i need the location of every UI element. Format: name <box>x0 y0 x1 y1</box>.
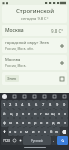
button[interactable]: с <box>18 127 24 136</box>
button[interactable]: т <box>36 127 42 136</box>
button[interactable]: х <box>62 109 68 118</box>
button[interactable]: Москва <box>2 25 67 36</box>
button[interactable]: Панель 1 <box>22 94 27 99</box>
button[interactable]: ь <box>42 127 48 136</box>
button[interactable]: п <box>26 118 32 127</box>
staticText: 7 <box>42 102 45 107</box>
button[interactable]: Панель 5 <box>62 94 67 99</box>
button[interactable]: з <box>56 109 62 118</box>
button[interactable]: е <box>26 109 32 118</box>
button[interactable]: 4 <box>19 100 26 109</box>
staticText: р <box>34 120 37 125</box>
staticText: ?123 <box>3 139 10 143</box>
button[interactable]: 5 <box>26 100 33 109</box>
staticText: й <box>3 111 6 116</box>
button[interactable]: ы <box>8 118 14 127</box>
staticText: у <box>16 111 19 116</box>
button[interactable]: я <box>8 127 13 136</box>
button[interactable]: а <box>20 118 26 127</box>
button[interactable]: 2 <box>7 100 13 109</box>
button[interactable]: ж <box>56 118 62 127</box>
button[interactable]: Строгинской <box>2 5 67 23</box>
button[interactable]: Добавить <box>59 43 64 48</box>
staticText: Россия, Моск. обл. <box>5 47 34 51</box>
button[interactable]: 7 <box>40 100 47 109</box>
button[interactable]: и <box>30 127 36 136</box>
button[interactable]: Shift <box>1 127 8 136</box>
button[interactable]: Поиск <box>57 136 68 145</box>
button[interactable]: Русский <box>23 136 51 145</box>
button[interactable]: м <box>24 127 30 136</box>
staticText: я <box>9 129 12 134</box>
button[interactable]: Очистить <box>59 76 64 81</box>
button[interactable]: о <box>38 118 44 127</box>
staticText: 9 <box>56 102 59 107</box>
staticText: а <box>22 120 25 125</box>
button[interactable]: городской округ Элек <box>2 38 67 53</box>
staticText: э <box>64 120 66 125</box>
staticText: л <box>46 120 49 125</box>
button[interactable]: щ <box>50 109 56 118</box>
button[interactable]: Элек <box>2 72 67 85</box>
button[interactable]: у <box>14 109 20 118</box>
staticText: в <box>16 120 19 125</box>
button[interactable]: г <box>38 109 44 118</box>
staticText: 0 <box>63 102 66 107</box>
staticText: б <box>50 129 53 134</box>
button[interactable]: 6 <box>33 100 40 109</box>
staticText: 6 <box>35 102 38 107</box>
button[interactable]: Добавить город <box>59 60 64 65</box>
staticText: з <box>58 111 60 116</box>
button[interactable]: ф <box>1 118 8 127</box>
button[interactable]: Панель 2 <box>32 94 37 99</box>
button[interactable]: ?123 <box>1 136 11 145</box>
button[interactable]: 3 <box>13 100 19 109</box>
button[interactable]: й <box>1 109 8 118</box>
button[interactable]: Точка <box>51 136 57 145</box>
staticText: ж <box>57 120 61 125</box>
button[interactable]: э <box>62 118 68 127</box>
staticText: 5 <box>28 102 31 107</box>
staticText: ц <box>10 111 13 116</box>
staticText: Россия, Моск. <box>5 64 27 68</box>
button[interactable]: н <box>32 109 38 118</box>
button[interactable]: ч <box>13 127 18 136</box>
staticText: городской округ Элек <box>5 40 50 46</box>
button[interactable]: р <box>32 118 38 127</box>
staticText: 3 <box>15 102 18 107</box>
button[interactable]: Москва <box>2 55 67 70</box>
button[interactable]: ю <box>54 127 60 136</box>
button[interactable]: Панель 0 <box>12 94 17 99</box>
button[interactable]: в <box>14 118 20 127</box>
button[interactable]: 9 <box>54 100 61 109</box>
staticText: 2 <box>9 102 12 107</box>
button[interactable]: Панель 3 <box>42 94 47 99</box>
staticText: н <box>34 111 37 116</box>
button[interactable]: Удалить <box>60 127 68 136</box>
staticText: Москва <box>5 57 21 63</box>
button[interactable]: Google <box>2 94 7 99</box>
button[interactable]: 0 <box>61 100 68 109</box>
button[interactable]: Панель 4 <box>52 94 57 99</box>
staticText: г <box>40 111 42 116</box>
staticText: к <box>22 111 25 116</box>
button[interactable]: 1 <box>1 100 7 109</box>
button[interactable]: Эмодзи <box>11 136 17 145</box>
staticText: п <box>28 120 31 125</box>
staticText: щ <box>51 111 55 116</box>
staticText: ч <box>14 129 17 134</box>
button[interactable]: 8 <box>47 100 54 109</box>
button[interactable]: к <box>20 109 26 118</box>
staticText: и <box>32 129 35 134</box>
staticText: ь <box>44 129 47 134</box>
staticText: Строгинской <box>16 7 54 15</box>
staticText: 1 <box>3 102 6 107</box>
button[interactable]: л <box>44 118 50 127</box>
staticText: 8 <box>49 102 52 107</box>
button[interactable]: б <box>48 127 54 136</box>
button[interactable]: д <box>50 118 56 127</box>
staticText: 4 <box>21 102 24 107</box>
button[interactable]: Настройки <box>17 136 23 145</box>
button[interactable]: ш <box>44 109 50 118</box>
button[interactable]: ц <box>8 109 14 118</box>
